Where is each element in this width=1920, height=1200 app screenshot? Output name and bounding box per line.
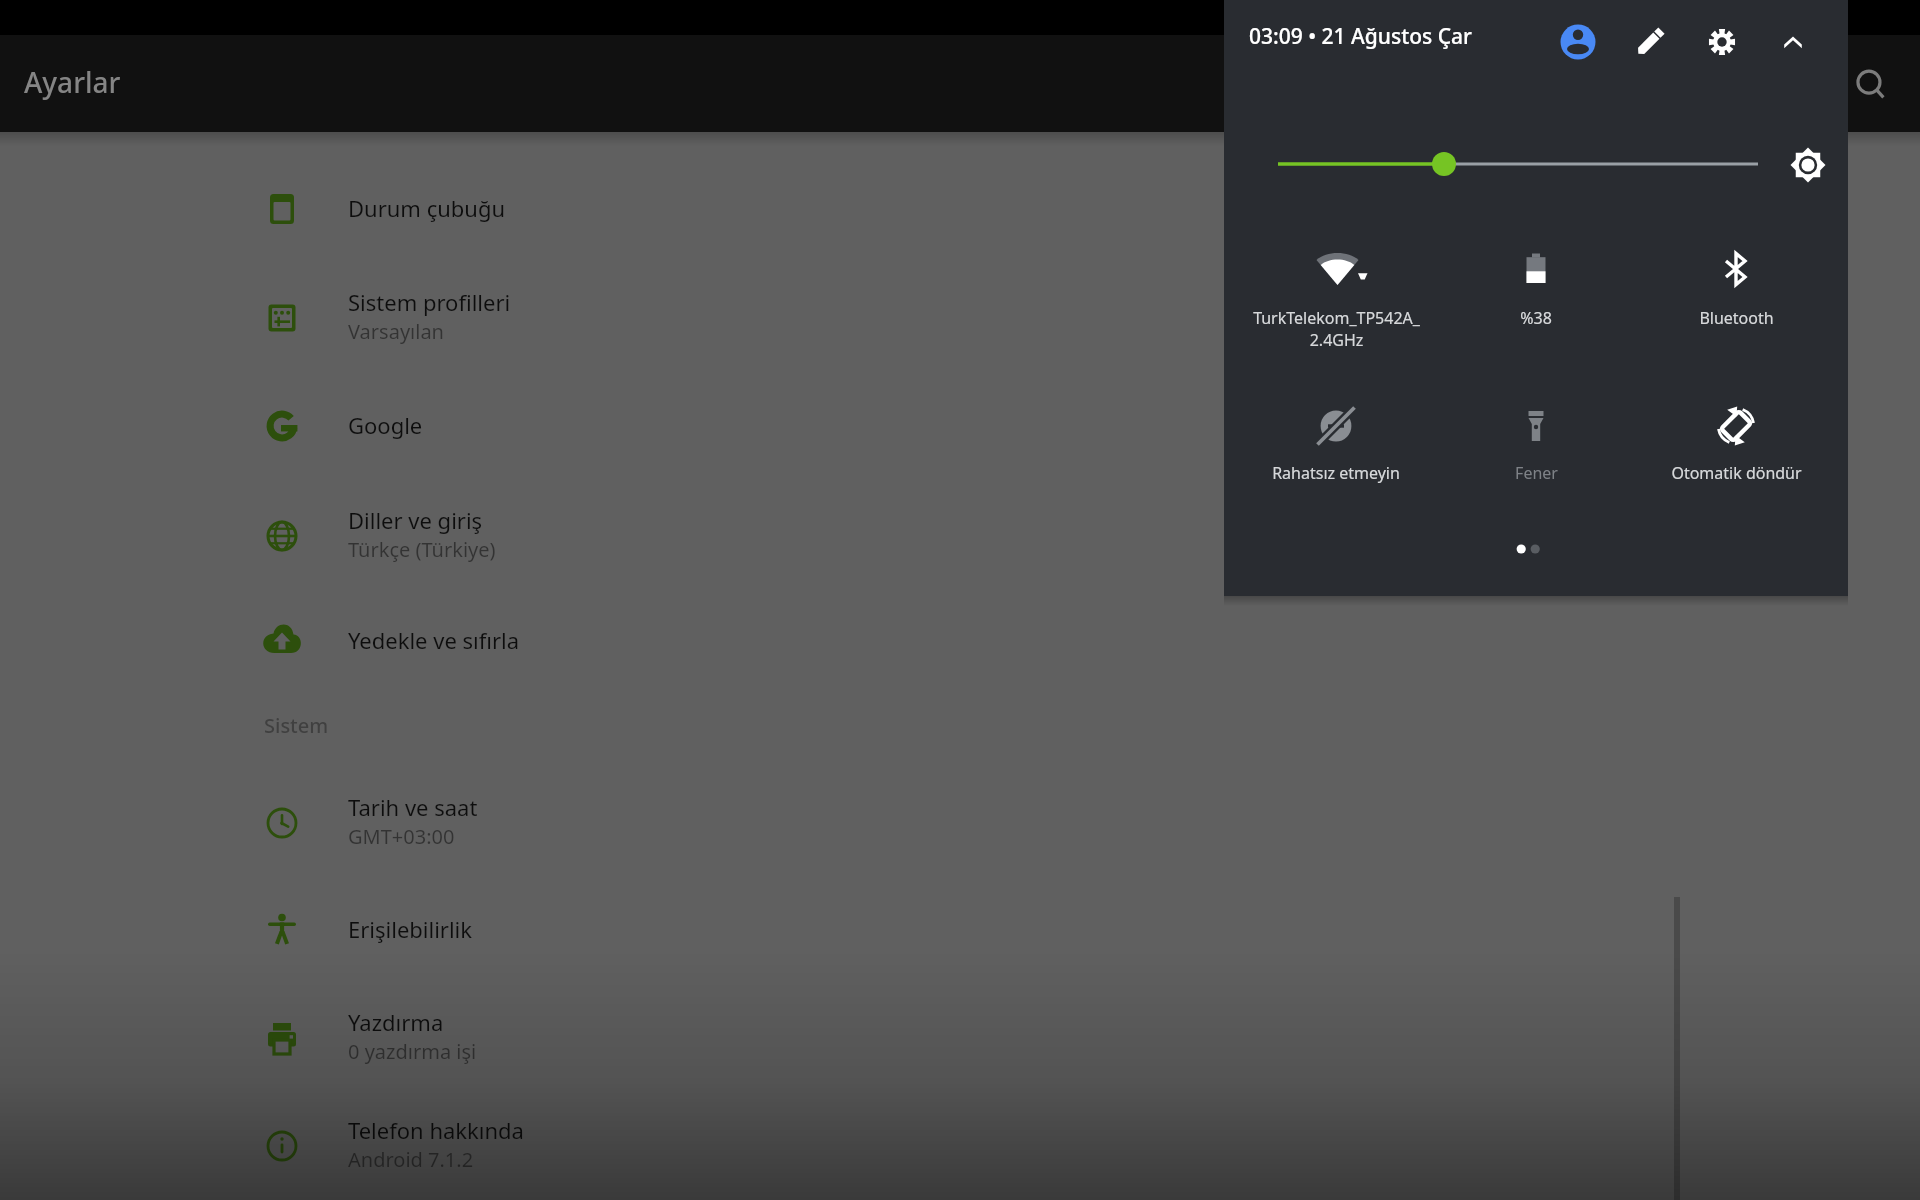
staticText: Varsayılan: [348, 318, 444, 345]
staticText: Yedekle ve sıfırla: [348, 625, 520, 655]
button[interactable]: Sistem profilleri: [0, 257, 1920, 365]
staticText: Diller ve giriş: [348, 505, 483, 535]
staticText: Türkçe (Türkiye): [348, 536, 496, 563]
staticText: Yazdırma: [348, 1007, 444, 1037]
button[interactable]: Settings: [1696, 16, 1748, 68]
staticText: Erişilebilirlik: [348, 914, 473, 944]
staticText: GMT+03:00: [348, 823, 455, 850]
staticText: Android 7.1.2: [348, 1146, 474, 1173]
staticText: %38: [1520, 307, 1552, 329]
button[interactable]: Brightness: [1278, 144, 1758, 184]
staticText: 0 yazdırma işi: [348, 1038, 477, 1065]
button[interactable]: %38: [1436, 225, 1636, 355]
staticText: Sistem: [264, 712, 329, 739]
staticText: Google: [348, 410, 423, 440]
button[interactable]: Fener: [1436, 382, 1636, 512]
button[interactable]: Search: [1840, 54, 1904, 118]
button[interactable]: Erişilebilirlik: [0, 884, 1920, 978]
button[interactable]: Edit: [1624, 16, 1676, 68]
staticText: TurkTelekom_TP542A_ 2.4GHz: [1253, 307, 1420, 351]
button[interactable]: Yazdırma: [0, 977, 1920, 1085]
staticText: Telefon hakkında: [348, 1115, 524, 1145]
staticText: Otomatik döndür: [1671, 462, 1802, 484]
staticText: Bluetooth: [1699, 307, 1774, 329]
button[interactable]: TurkTelekom_TP542A_ 2.4GHz: [1236, 225, 1436, 355]
button[interactable]: Google: [0, 380, 1920, 474]
staticText: Fener: [1515, 462, 1558, 484]
button[interactable]: Otomatik döndür: [1636, 382, 1836, 512]
button[interactable]: Yedekle ve sıfırla: [0, 595, 1920, 689]
staticText: Durum çubuğu: [348, 193, 506, 223]
button[interactable]: Account: [1552, 16, 1604, 68]
staticText: Sistem profilleri: [348, 287, 511, 317]
button[interactable]: Durum çubuğu: [0, 163, 1920, 257]
staticText: Rahatsız etmeyin: [1272, 462, 1400, 484]
button[interactable]: Tarih ve saat: [0, 762, 1920, 870]
staticText: Ayarlar: [24, 63, 121, 101]
button[interactable]: Diller ve giriş: [0, 475, 1920, 583]
button[interactable]: Rahatsız etmeyin: [1236, 382, 1436, 512]
button[interactable]: Auto brightness: [1782, 139, 1834, 191]
staticText: 03:09 • 21 Ağustos Çar: [1249, 22, 1472, 51]
staticText: Tarih ve saat: [348, 792, 478, 822]
button[interactable]: Bluetooth: [1636, 225, 1836, 355]
button[interactable]: Telefon hakkında: [0, 1085, 1920, 1193]
button[interactable]: Collapse: [1767, 16, 1819, 68]
